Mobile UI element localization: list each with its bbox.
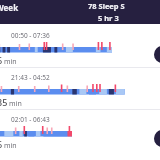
staticText: 35 min (0, 96, 22, 108)
button[interactable]: 21:43 - 04:52 (0, 70, 160, 160)
staticText: 78 Sleep S (88, 1, 125, 11)
staticText: 21:43 - 04:52 (11, 73, 50, 82)
staticText: 00:50 - 07:36 (11, 31, 50, 40)
staticText: 6 min (0, 138, 17, 150)
button[interactable]: 02:01 - 06:43 (0, 112, 160, 160)
button[interactable]: Sleep score (154, 46, 160, 63)
staticText: 5 hr 3 (98, 13, 119, 23)
button[interactable]: 00:50 - 07:36 (0, 28, 160, 160)
button[interactable]: Week (0, 2, 19, 13)
button[interactable]: 78 Sleep S (88, 1, 125, 23)
staticText: 6 min (0, 54, 17, 66)
button[interactable]: Sleep score (154, 130, 160, 147)
staticText: 02:01 - 06:43 (11, 115, 50, 124)
